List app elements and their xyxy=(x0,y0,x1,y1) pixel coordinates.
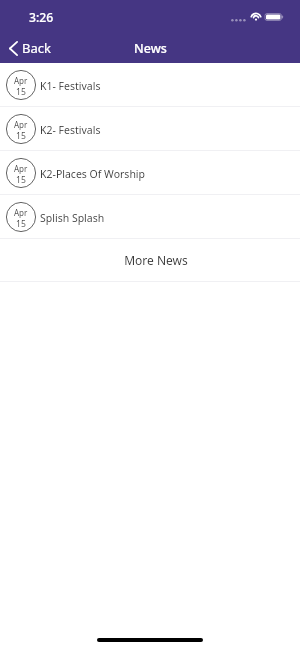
staticText: Apr xyxy=(14,75,28,86)
staticText: K2-Places Of Worship xyxy=(40,167,146,181)
staticText: 3:26 xyxy=(29,9,54,26)
button[interactable]: Apr xyxy=(0,107,300,151)
button[interactable]: Apr xyxy=(0,195,300,239)
other: Back xyxy=(9,41,18,56)
other: Cellular signal xyxy=(231,13,245,22)
button[interactable]: More News xyxy=(0,239,300,282)
staticText: Apr xyxy=(14,119,28,130)
staticText: 15 xyxy=(16,174,26,186)
staticText: Back xyxy=(22,39,51,57)
staticText: Apr xyxy=(14,207,28,218)
other: Wi-Fi xyxy=(250,12,262,22)
other: Battery full xyxy=(265,12,283,22)
staticText: Splish Splash xyxy=(40,211,105,225)
staticText: K2- Festivals xyxy=(40,123,101,137)
staticText: Apr xyxy=(14,163,28,174)
button[interactable]: Apr xyxy=(0,151,300,195)
staticText: 15 xyxy=(16,218,26,230)
staticText: News xyxy=(134,40,167,57)
button[interactable]: Back xyxy=(0,38,59,58)
staticText: More News xyxy=(124,252,188,268)
staticText: 15 xyxy=(16,130,26,142)
button[interactable]: Apr xyxy=(0,63,300,107)
staticText: K1- Festivals xyxy=(40,79,101,93)
staticText: 15 xyxy=(16,86,26,98)
